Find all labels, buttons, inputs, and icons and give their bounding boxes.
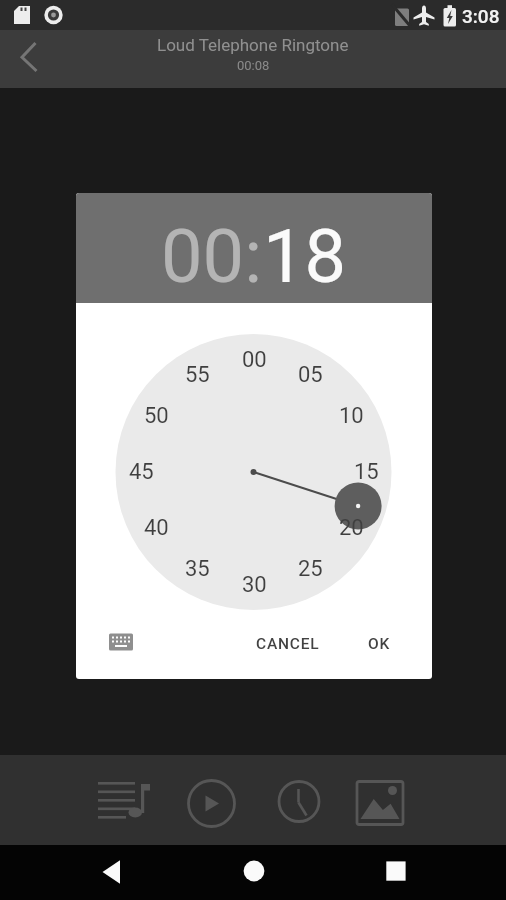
staticText: 20	[339, 515, 364, 541]
staticText: 10	[339, 403, 364, 429]
button[interactable]	[93, 769, 155, 831]
staticText: 00:08	[237, 58, 270, 73]
staticText: 35	[185, 556, 210, 582]
staticText: 25	[298, 556, 323, 582]
staticText: 15	[354, 459, 379, 485]
staticText: 50	[144, 403, 169, 429]
button[interactable]	[101, 624, 141, 664]
staticText: 00:	[161, 213, 263, 300]
button[interactable]: CANCEL	[248, 624, 328, 664]
staticText: 18	[263, 213, 347, 300]
button[interactable]	[181, 769, 243, 831]
button[interactable]	[350, 769, 412, 831]
staticText: 30	[242, 572, 267, 598]
button[interactable]	[229, 848, 279, 898]
staticText: Loud Telephone Ringtone	[157, 35, 349, 55]
staticText: 55	[185, 362, 210, 388]
button[interactable]	[88, 848, 138, 898]
staticText: 3:08	[462, 5, 500, 27]
button[interactable]	[268, 769, 330, 831]
button[interactable]: OK	[349, 624, 409, 664]
staticText: 00	[242, 347, 267, 373]
button[interactable]	[371, 848, 421, 898]
staticText: OK	[368, 635, 391, 653]
staticText: 45	[129, 459, 154, 485]
button[interactable]	[6, 43, 52, 87]
staticText: 40	[144, 515, 169, 541]
staticText: CANCEL	[256, 635, 320, 653]
staticText: 05	[298, 362, 323, 388]
